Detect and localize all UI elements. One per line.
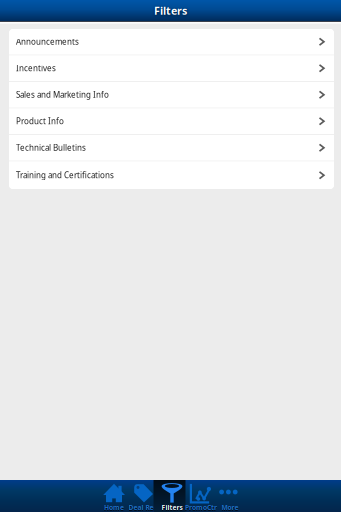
button[interactable]: More (215, 480, 244, 512)
staticText: Filters (161, 503, 182, 512)
staticText: Training and Certifications (16, 170, 114, 180)
button[interactable]: Sales and Marketing Info (9, 82, 334, 108)
staticText: Sales and Marketing Info (16, 89, 109, 100)
staticText: More (221, 504, 238, 512)
staticText: Filters (154, 3, 187, 18)
staticText: Home (104, 504, 124, 512)
staticText: Filters (161, 504, 182, 512)
staticText: Incentives (16, 63, 56, 73)
staticText: Announcements (16, 36, 79, 47)
button[interactable]: Training and Certifications (9, 161, 334, 189)
staticText: PromoCtr (185, 503, 217, 512)
staticText: Technical Bulletins (16, 142, 86, 153)
button[interactable]: Product Info (9, 108, 334, 135)
button[interactable]: Announcements (9, 29, 334, 55)
staticText: Deal Reg (128, 504, 157, 512)
button[interactable]: Deal Reg (128, 480, 157, 512)
staticText: Home (104, 503, 124, 512)
button[interactable]: Incentives (9, 55, 334, 82)
button[interactable]: Technical Bulletins (9, 135, 334, 161)
button[interactable]: PromoCtr (186, 480, 215, 512)
button[interactable]: Home (99, 480, 128, 512)
staticText: PromoCtr (185, 504, 217, 512)
staticText: Product Info (16, 116, 64, 126)
staticText: More (221, 503, 238, 512)
staticText: Deal Reg (128, 503, 157, 512)
button[interactable]: Filters (157, 480, 186, 512)
